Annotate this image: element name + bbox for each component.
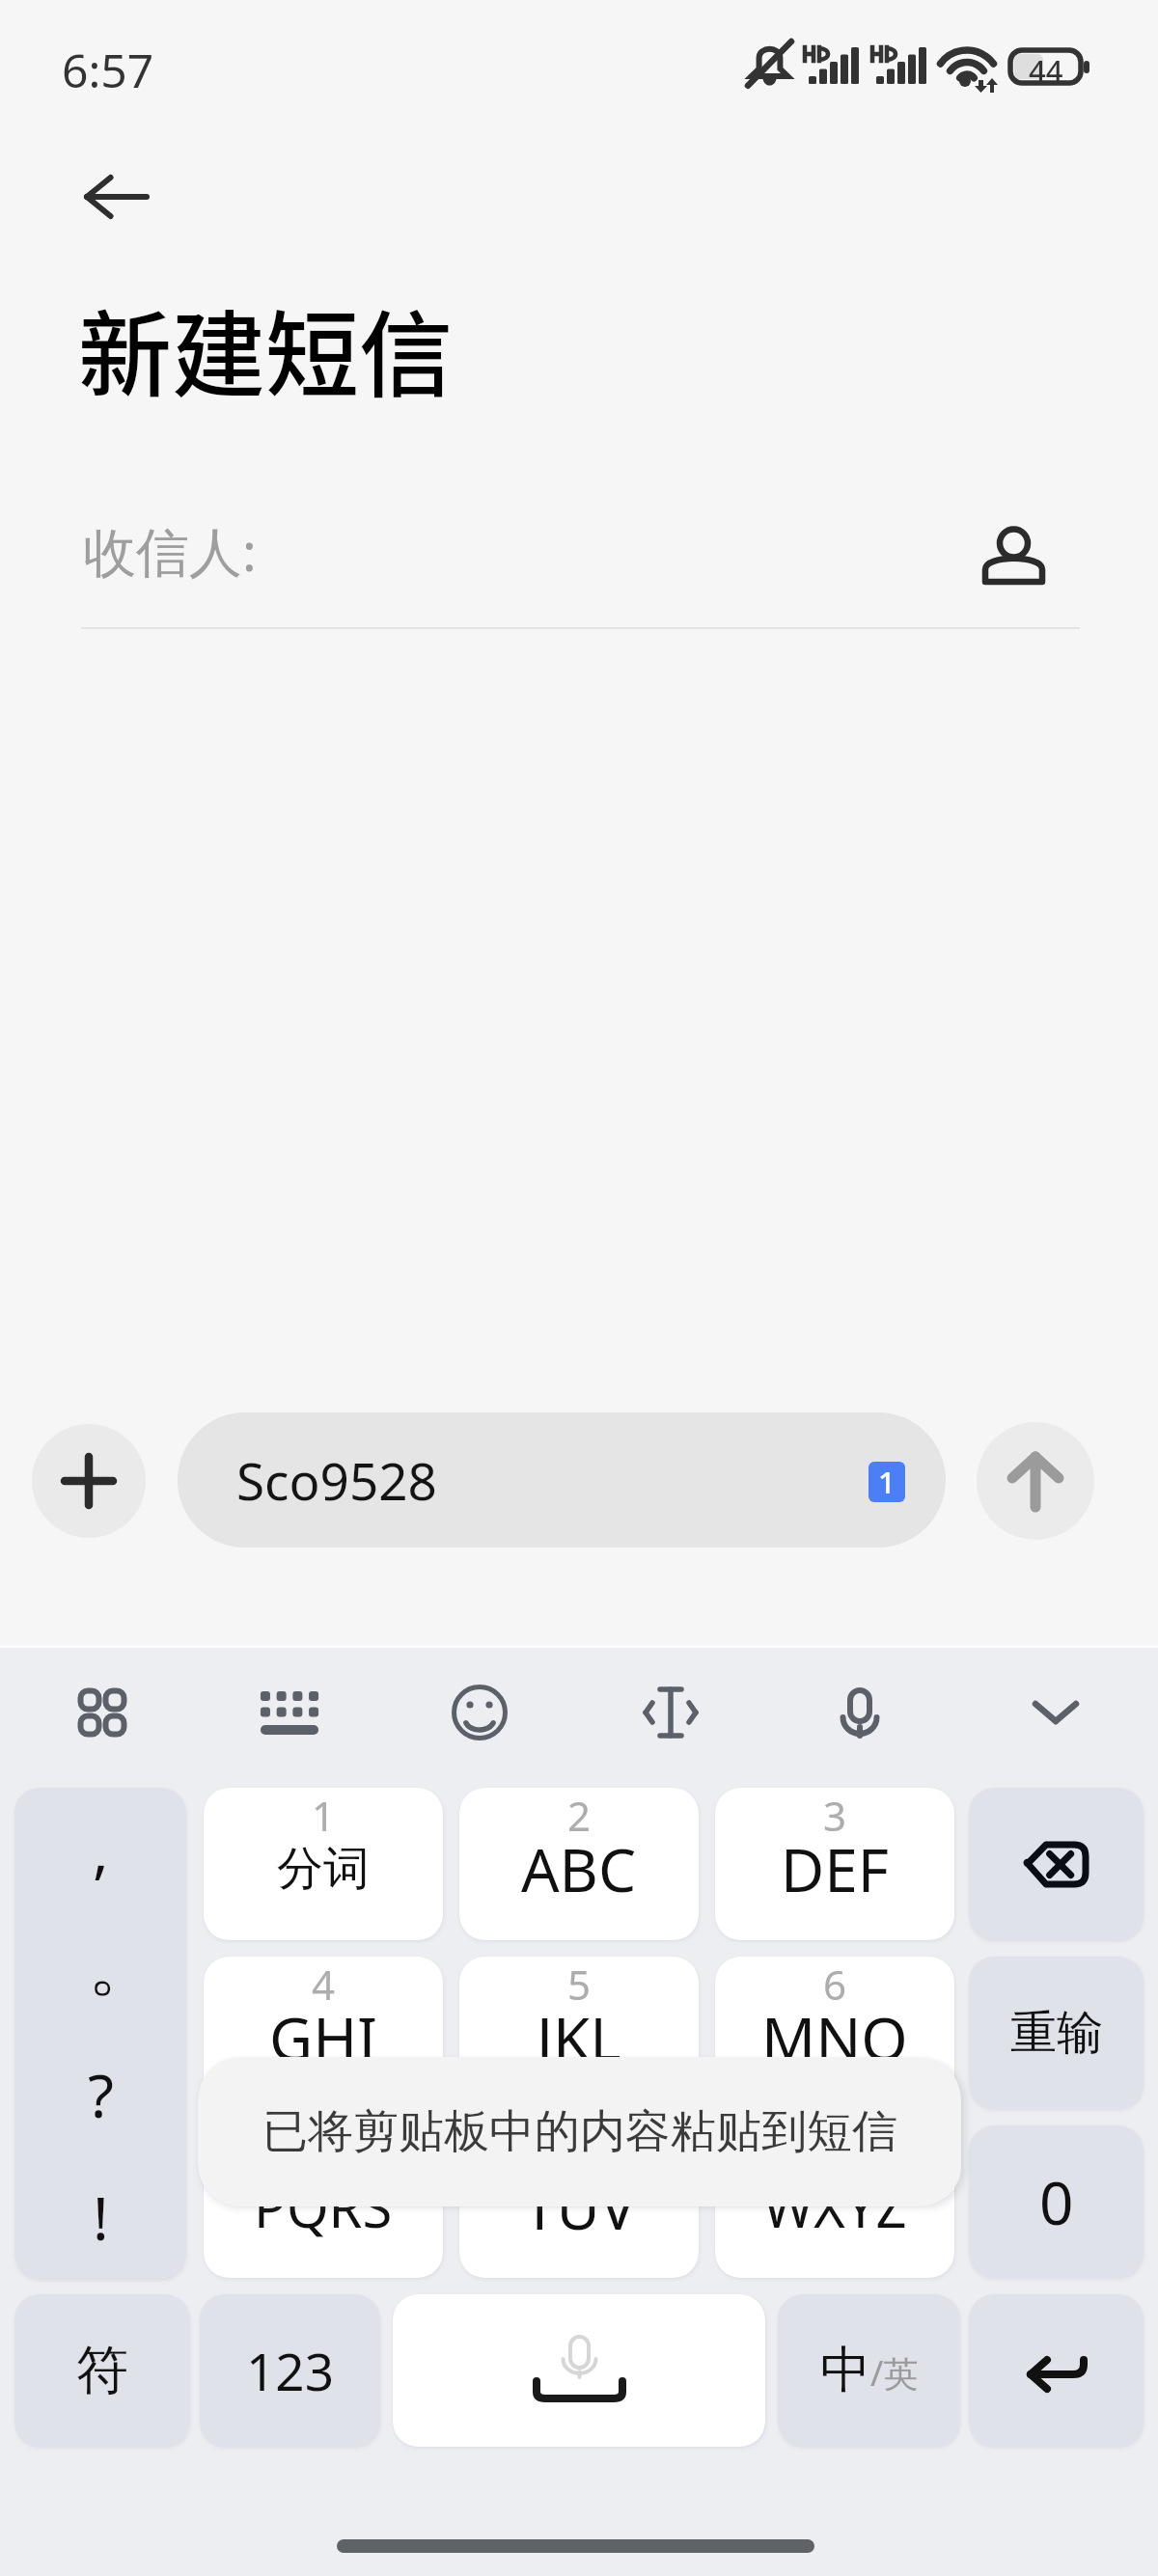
staticText: 中 bbox=[820, 2339, 870, 2402]
staticText: 重输 bbox=[1010, 2004, 1103, 2062]
staticText: 新建短信 bbox=[78, 280, 453, 415]
staticText: WXYZ bbox=[763, 2170, 907, 2243]
staticText: 5 bbox=[567, 1957, 592, 2012]
button[interactable]: 重输 bbox=[969, 1957, 1144, 2109]
button[interactable]: Chinese / English toggle bbox=[778, 2294, 960, 2447]
button[interactable]: Voice input bbox=[800, 1653, 920, 1772]
button[interactable]: 0 bbox=[969, 2125, 1144, 2278]
button[interactable]: 3 bbox=[715, 1788, 954, 1940]
button[interactable]: Enter bbox=[969, 2294, 1144, 2447]
staticText: ? bbox=[88, 2054, 114, 2135]
button[interactable]: Punctuation bbox=[14, 1788, 186, 2278]
staticText: MNO bbox=[761, 1997, 908, 2078]
button[interactable]: Choose contact bbox=[955, 497, 1071, 613]
button[interactable]: Space bbox=[393, 2294, 765, 2447]
staticText: DEF bbox=[781, 1828, 889, 1909]
button[interactable]: Keyboard layout bbox=[230, 1653, 349, 1772]
button[interactable]: 符 bbox=[14, 2294, 190, 2447]
button[interactable]: 1 bbox=[204, 1788, 443, 1940]
staticText: 。 bbox=[88, 1922, 157, 2010]
staticText: , bbox=[93, 1809, 109, 1890]
button[interactable]: Text cursor bbox=[611, 1653, 731, 1772]
staticText: GHI bbox=[269, 1997, 378, 2078]
staticText: 1 bbox=[878, 1462, 896, 1502]
button[interactable]: Backspace bbox=[969, 1788, 1144, 1940]
staticText: /英 bbox=[870, 2349, 919, 2397]
staticText: 0 bbox=[1039, 2161, 1074, 2242]
staticText: 4 bbox=[312, 1957, 336, 2012]
button[interactable]: Send bbox=[977, 1422, 1094, 1540]
staticText: PQRS bbox=[254, 2170, 393, 2243]
staticText: ABC bbox=[521, 1828, 637, 1909]
staticText: 123 bbox=[246, 2336, 334, 2405]
button[interactable]: 2 bbox=[459, 1788, 699, 1940]
button[interactable]: Hide keyboard bbox=[996, 1653, 1116, 1772]
staticText: 3 bbox=[823, 1788, 847, 1843]
button[interactable]: Sco9528 bbox=[178, 1412, 946, 1548]
button[interactable]: 4 bbox=[204, 1957, 443, 2109]
button[interactable]: 8 bbox=[459, 2125, 699, 2278]
button[interactable]: 7 bbox=[204, 2125, 443, 2278]
button[interactable]: 123 bbox=[200, 2294, 380, 2447]
staticText: 9 bbox=[823, 2125, 847, 2180]
staticText: JKL bbox=[537, 1997, 621, 2078]
button[interactable]: Add attachment bbox=[32, 1424, 146, 1538]
staticText: 6 bbox=[823, 1957, 847, 2012]
button[interactable]: Emoji bbox=[420, 1653, 539, 1772]
staticText: 符 bbox=[76, 2338, 128, 2403]
button[interactable]: Apps bbox=[42, 1653, 162, 1772]
staticText: 1 bbox=[312, 1788, 336, 1843]
staticText: 2 bbox=[567, 1788, 592, 1843]
staticText: 6:57 bbox=[62, 39, 154, 101]
staticText: 8 bbox=[567, 2125, 592, 2180]
staticText: 7 bbox=[312, 2125, 336, 2180]
staticText: ! bbox=[93, 2177, 109, 2258]
staticText: 44 bbox=[1029, 50, 1063, 83]
staticText: TUV bbox=[523, 2166, 636, 2247]
button[interactable]: 9 bbox=[715, 2125, 954, 2278]
staticText: 已将剪贴板中的内容粘贴到短信 bbox=[262, 2103, 897, 2160]
staticText: Sco9528 bbox=[236, 1445, 437, 1515]
staticText: 收信人: bbox=[83, 514, 257, 587]
button[interactable]: 5 bbox=[459, 1957, 699, 2109]
button[interactable]: 6 bbox=[715, 1957, 954, 2109]
staticText: 分词 bbox=[277, 1840, 370, 1898]
button[interactable]: Back bbox=[48, 143, 183, 251]
